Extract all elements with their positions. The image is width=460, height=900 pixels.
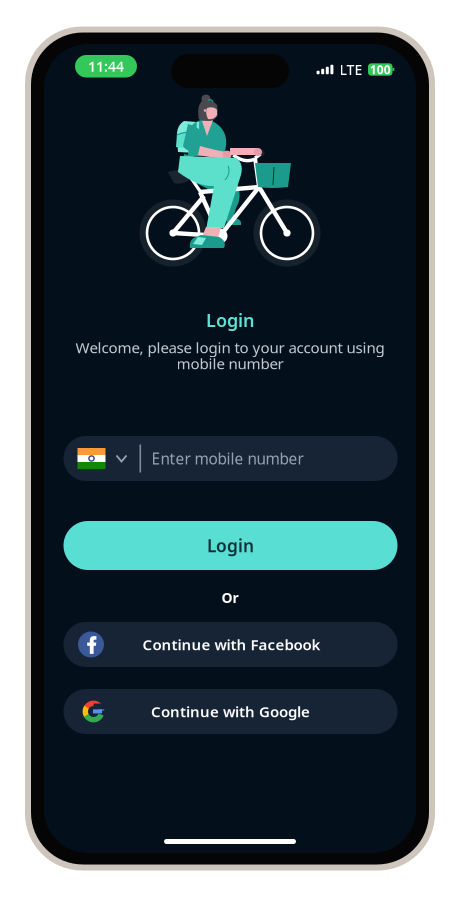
staticText: Continue with Facebook bbox=[142, 634, 320, 655]
button[interactable]: Enter mobile number bbox=[63, 436, 397, 481]
staticText: 100 bbox=[370, 61, 391, 78]
staticText: 11:44 bbox=[88, 57, 124, 76]
button[interactable]: Login bbox=[63, 521, 397, 570]
staticText: Or bbox=[221, 588, 238, 607]
staticText: mobile number bbox=[176, 353, 283, 374]
button[interactable]: Continue with Facebook bbox=[63, 622, 397, 667]
button[interactable]: Continue with Google bbox=[63, 689, 397, 734]
staticText: Welcome, please login to your account us… bbox=[75, 337, 384, 358]
staticText: Continue with Google bbox=[151, 701, 310, 722]
staticText: Enter mobile number bbox=[151, 448, 303, 469]
staticText: LTE bbox=[339, 60, 362, 79]
staticText: Login bbox=[207, 534, 254, 557]
staticText: Login bbox=[206, 308, 254, 332]
